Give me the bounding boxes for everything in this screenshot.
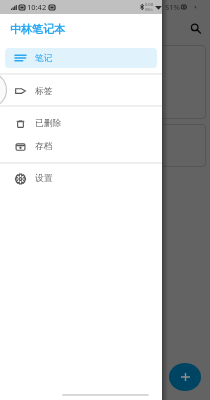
button[interactable]: 标签 (5, 81, 157, 101)
staticText: 设置 (35, 173, 53, 184)
button[interactable]: 笔记 (5, 48, 157, 68)
button[interactable] (4, 124, 206, 167)
button[interactable]: 存档 (5, 135, 157, 158)
staticText: 标签 (35, 86, 53, 97)
staticText: 已删除 (35, 118, 62, 129)
staticText: 笔记 (35, 53, 53, 64)
button[interactable]: 设置 (5, 168, 157, 189)
button[interactable]: Add note (169, 363, 201, 391)
staticText: 0.00 (145, 2, 153, 7)
staticText: 51% (165, 2, 180, 12)
button[interactable]: 已删除 (5, 112, 157, 135)
staticText: KB/s (145, 7, 153, 12)
button[interactable] (4, 45, 206, 119)
staticText: 10:42 (27, 2, 47, 12)
staticText: 存档 (35, 141, 53, 152)
button[interactable]: Search (186, 19, 204, 37)
staticText: 中林笔记本 (10, 22, 65, 36)
